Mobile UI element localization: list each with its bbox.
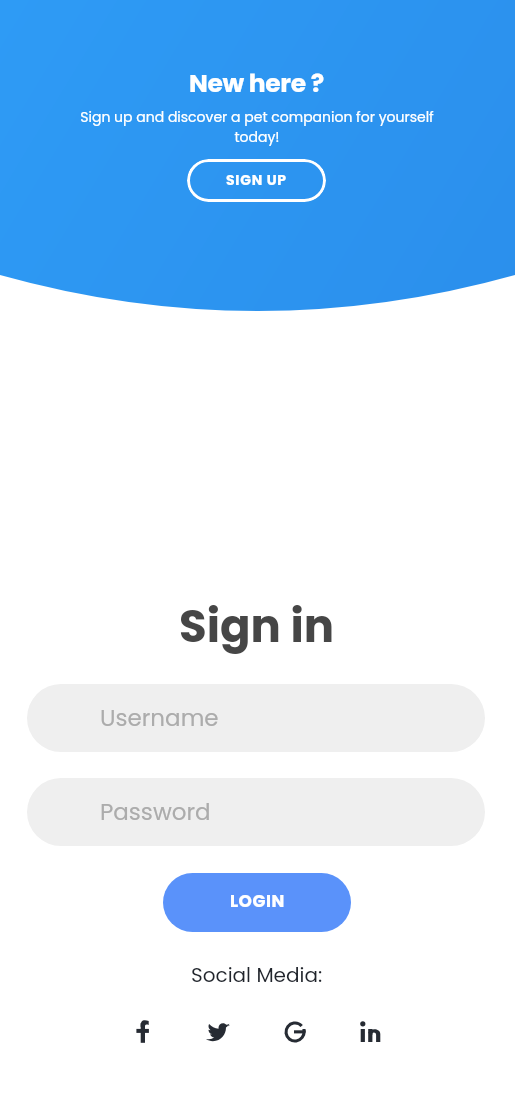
button[interactable]: Username bbox=[27, 684, 485, 752]
button[interactable]: SIGN UP bbox=[187, 159, 326, 202]
staticText: Social Media: bbox=[191, 961, 323, 989]
staticText: Username bbox=[100, 702, 219, 734]
button[interactable]: Google bbox=[275, 1012, 315, 1052]
staticText: Sign in bbox=[179, 595, 334, 658]
button[interactable]: LinkedIn bbox=[351, 1012, 391, 1052]
staticText: Password bbox=[100, 796, 211, 828]
staticText: SIGN UP bbox=[226, 170, 287, 190]
button[interactable]: Password bbox=[27, 778, 485, 846]
staticText: New here ? bbox=[189, 66, 324, 101]
staticText: LOGIN bbox=[230, 889, 285, 913]
button[interactable]: Twitter bbox=[198, 1012, 238, 1052]
button[interactable]: LOGIN bbox=[163, 873, 351, 932]
button[interactable]: Facebook bbox=[122, 1012, 162, 1052]
staticText: Sign up and discover a pet companion for… bbox=[73, 107, 441, 147]
